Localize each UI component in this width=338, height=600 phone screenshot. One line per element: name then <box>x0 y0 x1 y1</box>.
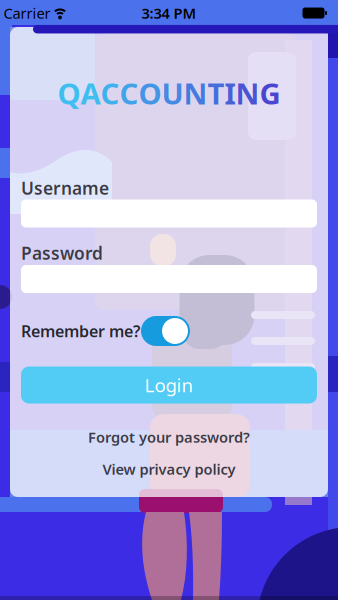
staticText: C <box>119 73 138 112</box>
staticText: Username <box>21 176 109 199</box>
button[interactable]: View privacy policy <box>102 459 235 479</box>
staticText: N <box>235 73 259 112</box>
staticText: I <box>224 73 235 112</box>
staticText: View privacy policy <box>102 459 235 479</box>
staticText: Remember me? <box>21 320 140 342</box>
button[interactable]: Forgot your password? <box>88 427 250 447</box>
staticText: Password <box>21 241 103 264</box>
staticText: N <box>183 73 207 112</box>
staticText: Login <box>144 373 193 397</box>
staticText: 3:34 PM <box>141 3 196 23</box>
staticText: G <box>259 73 280 112</box>
staticText: O <box>138 73 161 112</box>
button[interactable]: Login <box>21 366 317 403</box>
staticText: U <box>161 73 183 112</box>
staticText: C <box>100 73 119 112</box>
staticText: A <box>80 73 100 112</box>
button[interactable]: Remember me <box>141 316 190 346</box>
staticText: Carrier <box>3 3 50 23</box>
staticText: Q <box>57 73 80 112</box>
staticText: Forgot your password? <box>88 427 250 447</box>
staticText: T <box>207 73 224 112</box>
